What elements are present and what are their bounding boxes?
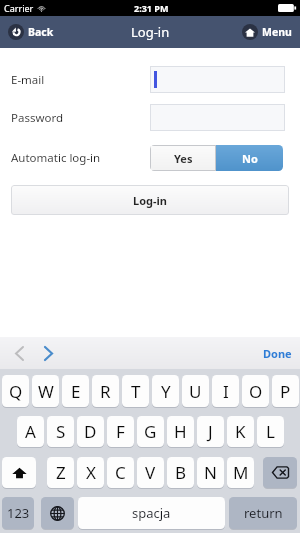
staticText: H (174, 420, 187, 443)
staticText: N (204, 461, 217, 484)
staticText: Password (11, 110, 64, 126)
staticText: T (131, 380, 141, 403)
button[interactable]: No (216, 145, 283, 171)
button[interactable]: R (92, 375, 119, 407)
button[interactable]: O (242, 375, 269, 407)
button[interactable]: L (257, 416, 284, 447)
button[interactable]: V (137, 457, 164, 488)
staticText: Z (56, 461, 66, 484)
button[interactable]: P (272, 375, 299, 407)
staticText: W (38, 380, 54, 403)
button[interactable]: D (77, 416, 104, 447)
button[interactable]: E (62, 375, 89, 407)
button[interactable]: S (47, 416, 74, 447)
staticText: C (115, 461, 126, 484)
button[interactable]: I (212, 375, 239, 407)
staticText: Done (263, 346, 292, 361)
button[interactable]: Y (152, 375, 179, 407)
staticText: A (25, 420, 36, 443)
button[interactable]: return (229, 497, 297, 529)
staticText: K (235, 420, 246, 443)
staticText: F (116, 420, 125, 443)
button[interactable]: X (77, 457, 104, 488)
staticText: J (208, 420, 213, 443)
staticText: Yes (174, 151, 193, 166)
button[interactable]: Back (5, 20, 57, 44)
staticText: R (100, 380, 111, 403)
staticText: V (145, 461, 156, 484)
button[interactable]: F (107, 416, 134, 447)
staticText: B (175, 461, 187, 484)
staticText: Y (161, 380, 171, 403)
button[interactable]: Shift (2, 457, 36, 488)
staticText: Automatic log-in (11, 150, 101, 166)
button[interactable] (150, 66, 285, 93)
button[interactable]: C (107, 457, 134, 488)
button[interactable]: Backspace (263, 457, 297, 488)
button[interactable]: Previous field (8, 340, 30, 366)
button[interactable]: K (227, 416, 254, 447)
staticText: I (223, 380, 229, 403)
staticText: Carrier (4, 2, 34, 14)
staticText: 2:31 PM (134, 2, 169, 14)
staticText: U (189, 380, 202, 403)
button[interactable]: A (17, 416, 44, 447)
button[interactable]: U (182, 375, 209, 407)
button[interactable] (150, 104, 285, 131)
button[interactable]: Menu (239, 20, 295, 44)
button[interactable]: Yes (150, 145, 216, 171)
staticText: L (266, 420, 275, 443)
staticText: O (249, 380, 263, 403)
button[interactable]: J (197, 416, 224, 447)
staticText: No (242, 151, 258, 166)
button[interactable]: Next field (37, 340, 59, 366)
button[interactable]: G (137, 416, 164, 447)
button[interactable]: H (167, 416, 194, 447)
button[interactable]: T (122, 375, 149, 407)
staticText: X (86, 461, 96, 484)
staticText: spacja (132, 504, 171, 522)
button[interactable]: N (197, 457, 224, 488)
button[interactable]: W (32, 375, 59, 407)
staticText: Menu (262, 25, 292, 39)
staticText: D (84, 420, 97, 443)
staticText: E (71, 380, 81, 403)
staticText: Log-in (131, 23, 170, 41)
staticText: Back (28, 25, 54, 39)
staticText: P (280, 380, 291, 403)
staticText: Log-in (133, 193, 167, 208)
button[interactable]: Z (47, 457, 74, 488)
staticText: 123 (7, 504, 30, 522)
button[interactable]: Q (2, 375, 29, 407)
staticText: S (56, 420, 66, 443)
staticText: G (144, 420, 157, 443)
button[interactable]: Log-in (11, 185, 289, 215)
staticText: E-mail (11, 72, 45, 88)
button[interactable]: B (167, 457, 194, 488)
staticText: Q (9, 380, 23, 403)
button[interactable]: 123 (2, 497, 34, 529)
staticText: M (233, 461, 249, 484)
button[interactable]: Change keyboard language (41, 497, 74, 529)
button[interactable]: spacja (78, 497, 225, 529)
button[interactable]: Done (263, 346, 292, 361)
staticText: return (244, 504, 283, 522)
button[interactable]: M (227, 457, 254, 488)
